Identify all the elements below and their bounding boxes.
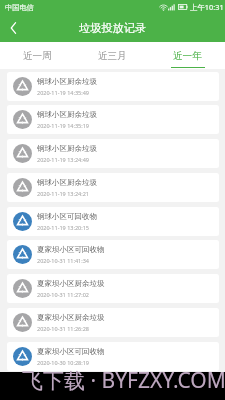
staticText: 2020-11-19 13:24:21 — [37, 190, 89, 197]
staticText: 夏家坝小区可回收物 — [37, 347, 105, 356]
staticText: 2020-10-31 11:41:34 — [37, 257, 89, 264]
staticText: 钢球小区厨余垃圾 — [37, 110, 97, 119]
staticText: 垃圾投放记录 — [79, 21, 147, 35]
button[interactable]: 钢球小区厨余垃圾 — [7, 139, 219, 168]
staticText: 上午10:31 — [190, 2, 224, 12]
staticText: 2020-11-19 13:20:15 — [37, 224, 89, 231]
button[interactable]: 夏家坝小区厨余垃圾 — [7, 308, 219, 337]
staticText: 2020-11-19 14:35:49 — [37, 89, 89, 96]
button[interactable]: 返回 — [0, 15, 26, 41]
staticText: 中国电信 — [5, 3, 34, 12]
button[interactable]: 夏家坝小区可回收物 — [7, 240, 219, 269]
staticText: 近三月 — [98, 50, 127, 62]
button[interactable]: 近一周 — [0, 42, 75, 69]
staticText: 2020-10-31 11:27:02 — [37, 291, 89, 298]
staticText: 2020-10-31 11:26:28 — [37, 325, 89, 332]
button[interactable]: 夏家坝小区可回收物 — [7, 342, 219, 371]
button[interactable]: 夏家坝小区厨余垃圾 — [7, 274, 219, 303]
button[interactable]: 近一年 — [150, 42, 225, 69]
staticText: 钢球小区厨余垃圾 — [37, 77, 97, 86]
staticText: 钢球小区厨余垃圾 — [37, 178, 97, 187]
button[interactable]: 钢球小区可回收物 — [7, 207, 219, 236]
staticText: 钢球小区可回收物 — [37, 212, 97, 221]
staticText: 2020-11-19 13:24:49 — [37, 156, 89, 163]
button[interactable]: 近三月 — [75, 42, 150, 69]
staticText: 近一周 — [23, 50, 52, 62]
staticText: 夏家坝小区可回收物 — [37, 245, 105, 254]
staticText: 夏家坝小区厨余垃圾 — [37, 279, 105, 288]
button[interactable]: 钢球小区厨余垃圾 — [7, 72, 219, 101]
button[interactable]: 钢球小区厨余垃圾 — [7, 173, 219, 202]
staticText: 近一年 — [173, 50, 202, 62]
staticText: 2020-11-19 14:35:19 — [37, 122, 89, 129]
staticText: 飞下载 · BYFZXY.COM — [22, 366, 225, 395]
staticText: 钢球小区厨余垃圾 — [37, 144, 97, 153]
staticText: 2020-10-30 10:28:19 — [37, 359, 89, 366]
button[interactable]: 钢球小区厨余垃圾 — [7, 105, 219, 134]
staticText: 夏家坝小区厨余垃圾 — [37, 313, 105, 322]
